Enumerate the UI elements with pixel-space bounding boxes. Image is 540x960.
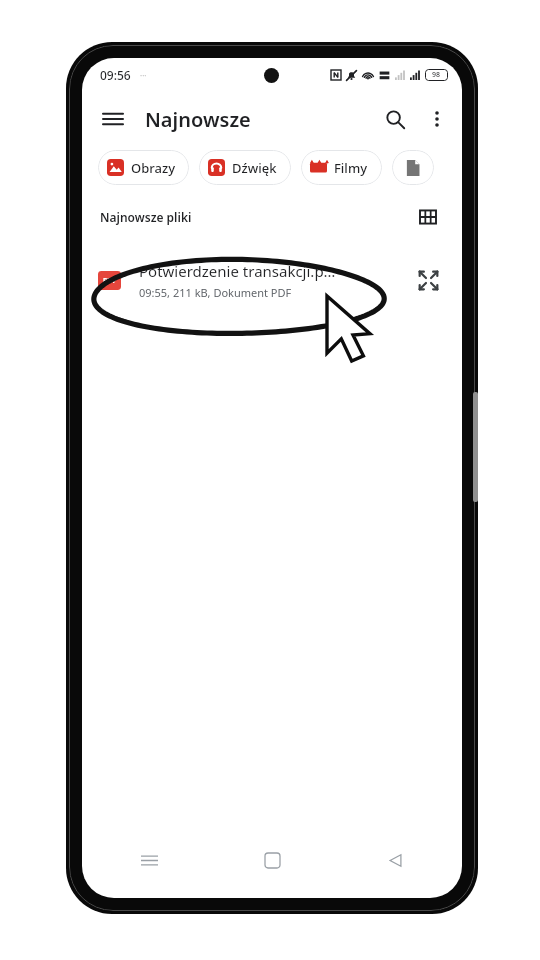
staticText: Filmy (334, 159, 368, 177)
staticText: Najnowsze pliki (100, 209, 192, 225)
button[interactable]: Obrazy (98, 150, 189, 185)
button[interactable]: Filmy (301, 150, 382, 185)
button[interactable]: Menu (92, 98, 134, 140)
staticText: Dźwięk (232, 159, 277, 177)
button[interactable]: Grid view (412, 201, 444, 233)
button[interactable]: Documents (392, 150, 434, 185)
staticText: 98 (432, 70, 441, 80)
staticText: Obrazy (131, 159, 175, 177)
button[interactable]: Dźwięk (199, 150, 291, 185)
button[interactable]: Back (374, 839, 416, 881)
button[interactable]: Search (374, 98, 416, 140)
staticText: ··· (140, 70, 147, 81)
staticText: Najnowsze (145, 106, 251, 133)
staticText: PDF (103, 276, 117, 286)
button[interactable]: Expand (410, 262, 446, 298)
staticText: 09:55, 211 kB, Dokument PDF (139, 285, 292, 300)
staticText: Potwierdzenie transakcji.p… (139, 261, 336, 281)
button[interactable]: Recents (128, 839, 170, 881)
button[interactable]: Home (251, 839, 293, 881)
staticText: 09:56 (100, 67, 131, 83)
button[interactable]: More options (416, 98, 458, 140)
button[interactable]: PDF (82, 249, 462, 311)
